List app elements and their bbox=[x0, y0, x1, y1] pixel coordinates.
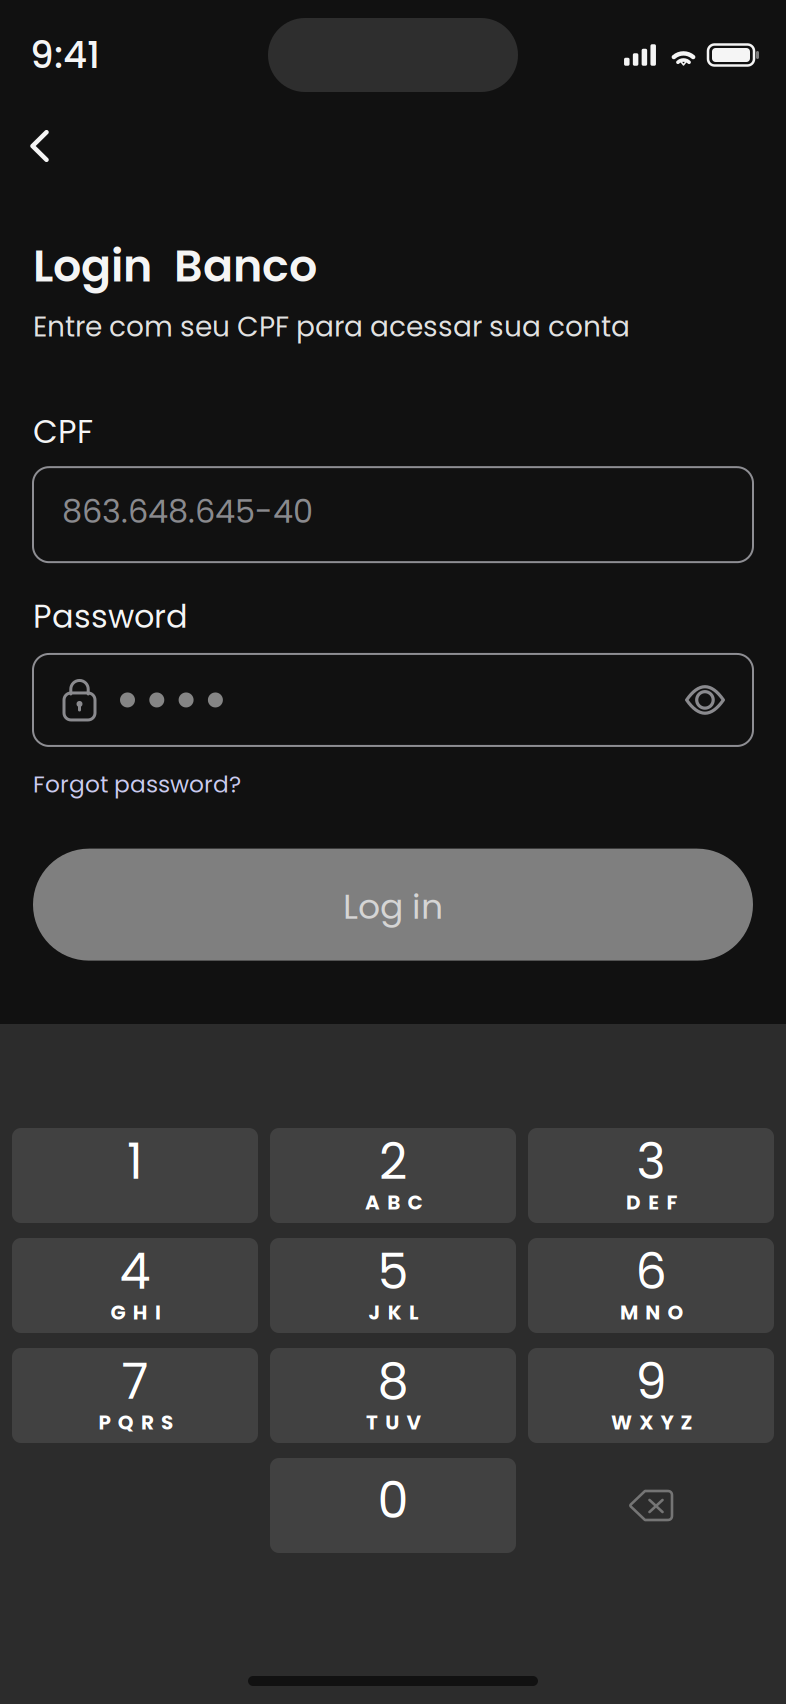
staticText: G H I bbox=[111, 1298, 161, 1326]
staticText: A B C bbox=[365, 1188, 422, 1216]
staticText: 8 bbox=[377, 1347, 408, 1416]
staticText: CPF bbox=[33, 409, 93, 454]
staticText: 3 bbox=[636, 1127, 665, 1196]
staticText: 0 bbox=[377, 1466, 408, 1535]
button[interactable]: 8 bbox=[270, 1348, 516, 1443]
staticText: P Q R S bbox=[98, 1408, 173, 1436]
staticText: Log in bbox=[343, 882, 443, 931]
staticText: 4 bbox=[119, 1237, 150, 1306]
staticText: Forgot password? bbox=[33, 768, 241, 801]
button[interactable]: 4 bbox=[12, 1238, 258, 1333]
button[interactable]: 5 bbox=[270, 1238, 516, 1333]
staticText: 9:41 bbox=[30, 29, 100, 81]
staticText: 5 bbox=[377, 1237, 408, 1306]
staticText: W X Y Z bbox=[611, 1408, 693, 1436]
staticText: T U V bbox=[366, 1408, 421, 1436]
staticText: J K L bbox=[369, 1298, 419, 1326]
button[interactable]: 3 bbox=[528, 1128, 774, 1223]
button[interactable]: 2 bbox=[270, 1128, 516, 1223]
staticText: D E F bbox=[626, 1188, 677, 1216]
button[interactable]: Back bbox=[0, 110, 77, 178]
button[interactable]: Show password bbox=[685, 684, 725, 716]
staticText: Login Banco bbox=[33, 235, 317, 297]
button[interactable]: 6 bbox=[528, 1238, 774, 1333]
button[interactable]: Log in bbox=[33, 849, 753, 961]
staticText: M N O bbox=[620, 1298, 683, 1326]
staticText: 1 bbox=[127, 1127, 143, 1196]
button[interactable]: 0 bbox=[270, 1458, 516, 1553]
button[interactable]: 1 bbox=[12, 1128, 258, 1223]
staticText: 6 bbox=[635, 1237, 666, 1306]
button[interactable]: 7 bbox=[12, 1348, 258, 1443]
staticText: 7 bbox=[121, 1347, 148, 1416]
staticText: 863.648.645-40 bbox=[62, 489, 313, 534]
staticText: 9 bbox=[635, 1347, 666, 1416]
button[interactable]: Forgot password? bbox=[33, 768, 241, 801]
button[interactable]: 9 bbox=[528, 1348, 774, 1443]
staticText: Password bbox=[33, 594, 188, 639]
staticText: 2 bbox=[379, 1127, 407, 1196]
button[interactable]: Delete bbox=[528, 1458, 774, 1553]
staticText: Entre com seu CPF para acessar sua conta bbox=[33, 307, 630, 346]
